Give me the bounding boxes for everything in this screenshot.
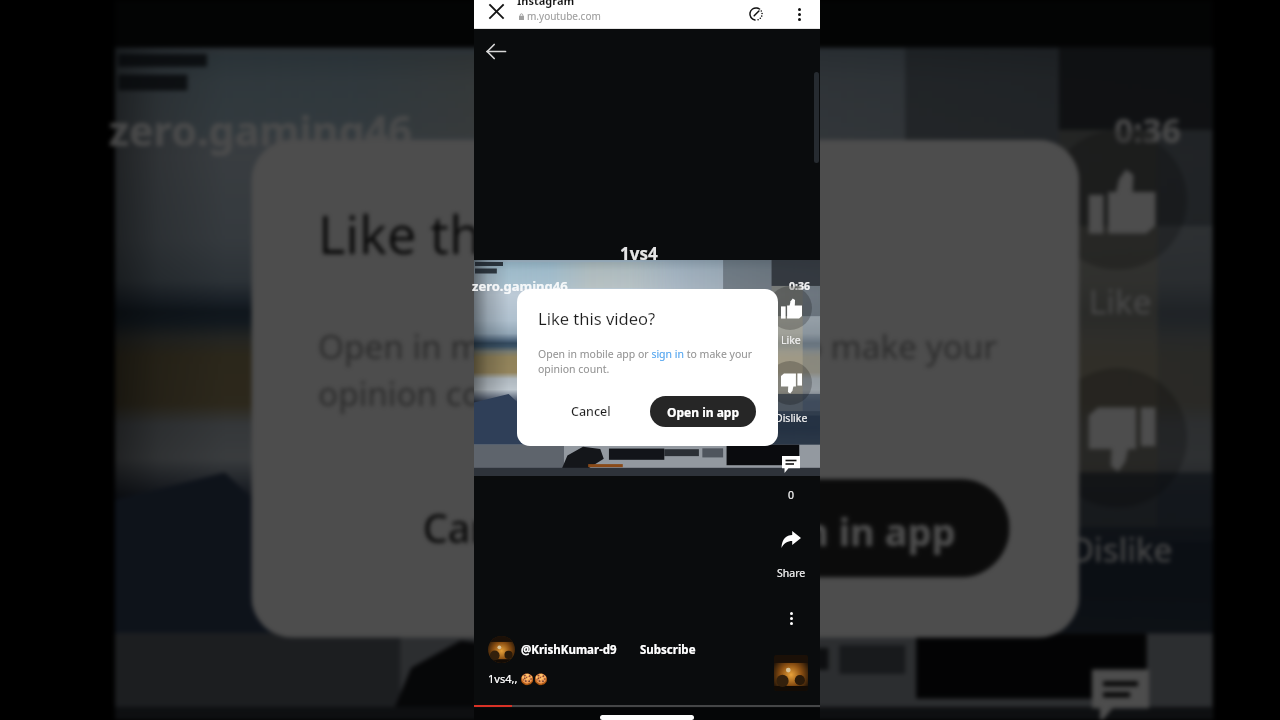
button[interactable]: Back	[482, 37, 510, 65]
button[interactable]: Channel avatar	[488, 636, 515, 663]
button[interactable]: More options	[788, 3, 810, 25]
staticText: Open in app	[727, 504, 959, 555]
staticText: Subscribe	[640, 642, 696, 658]
button[interactable]: @KrishKumar-d9	[521, 642, 617, 658]
staticText: m.youtube.com	[527, 9, 601, 23]
button[interactable]: Like	[774, 291, 808, 325]
button[interactable]: Close	[485, 0, 507, 22]
staticText: Open in app	[667, 404, 740, 420]
staticText: zero.gaming46	[109, 102, 413, 159]
button[interactable]: Reload	[745, 3, 767, 25]
staticText: Dislike	[1070, 527, 1174, 571]
staticText: @KrishKumar-d9	[521, 642, 617, 658]
staticText: Like this video?	[538, 307, 656, 329]
button[interactable]: Dislike	[774, 366, 808, 400]
staticText: Open in mobile app or sign in to make yo…	[538, 347, 760, 376]
staticText: Open in mobile app or sign in to make yo…	[318, 324, 1022, 416]
staticText: Cancel	[571, 403, 611, 420]
staticText: 1vs4	[620, 242, 658, 265]
staticText: 1vs4,, 🍪🍪	[488, 671, 548, 686]
staticText: Like	[781, 333, 801, 347]
staticText: Like	[1089, 279, 1152, 324]
staticText: Cancel	[423, 501, 550, 555]
staticText: 0:36	[1114, 108, 1181, 152]
button[interactable]: Subscribe	[640, 642, 696, 658]
staticText: Dislike	[775, 411, 808, 425]
button[interactable]: Open in app	[650, 396, 756, 427]
staticText: Instagram	[517, 0, 575, 8]
staticText: Share	[777, 566, 806, 580]
staticText: 0:36	[789, 279, 810, 293]
button[interactable]: Comments	[774, 447, 808, 481]
staticText: 1vs4	[578, 0, 699, 64]
button[interactable]: Share	[774, 522, 808, 556]
staticText: zero.gaming46	[472, 277, 568, 295]
staticText: 0	[788, 488, 795, 502]
button[interactable]: Next video	[774, 655, 808, 691]
staticText: Like this video?	[318, 197, 692, 267]
button[interactable]: More actions	[774, 601, 808, 635]
button[interactable]: Cancel	[559, 396, 623, 427]
